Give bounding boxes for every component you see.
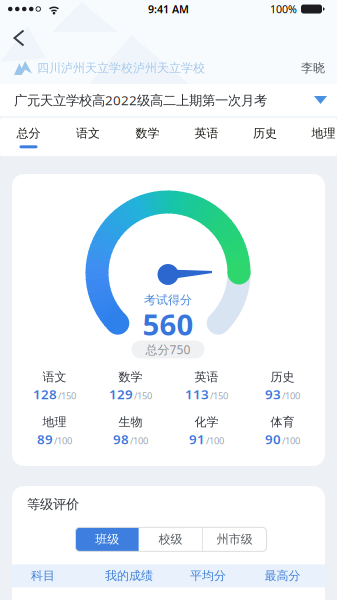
staticText: 我的成绩 xyxy=(105,568,153,583)
staticText: 考试得分 xyxy=(144,293,192,307)
staticText: 英语 xyxy=(194,126,218,141)
staticText: 体育 xyxy=(270,415,294,429)
staticText: 历史 xyxy=(253,126,277,141)
staticText: 数学 xyxy=(135,126,159,141)
staticText: 91 xyxy=(189,430,205,448)
staticText: 生物 xyxy=(118,415,142,429)
staticText: 总分750 xyxy=(145,341,190,357)
staticText: 广元天立学校高2022级高二上期第一次月考 xyxy=(14,91,267,109)
button[interactable]: 地理 xyxy=(311,125,335,148)
staticText: 最高分 xyxy=(264,568,300,583)
staticText: /100 xyxy=(282,389,300,402)
staticText: /100 xyxy=(54,434,72,447)
staticText: 100% xyxy=(270,2,297,16)
staticText: 89 xyxy=(37,430,53,448)
staticText: /150 xyxy=(58,389,76,402)
button[interactable]: 校级 xyxy=(139,527,202,551)
staticText: 90 xyxy=(265,430,281,448)
staticText: 科目 xyxy=(31,568,55,583)
staticText: 93 xyxy=(265,385,281,403)
staticText: /100 xyxy=(282,434,300,447)
button[interactable]: Back xyxy=(7,24,30,51)
staticText: 数学 xyxy=(118,370,142,384)
staticText: 语文 xyxy=(42,370,66,384)
button[interactable]: 班级 xyxy=(75,527,139,551)
staticText: 地理 xyxy=(42,415,66,429)
staticText: 班级 xyxy=(95,532,119,547)
staticText: 平均分 xyxy=(190,568,226,583)
staticText: 128 xyxy=(33,385,57,403)
button[interactable]: 语文 xyxy=(76,125,100,148)
staticText: 129 xyxy=(109,385,133,403)
staticText: 9:41 AM xyxy=(148,2,189,16)
staticText: /150 xyxy=(134,389,152,402)
button[interactable]: 总分 xyxy=(16,125,40,148)
staticText: 化学 xyxy=(194,415,218,429)
button[interactable]: 广元天立学校高2022级高二上期第一次月考 xyxy=(0,84,337,116)
staticText: 英语 xyxy=(194,370,218,384)
staticText: /150 xyxy=(210,389,228,402)
staticText: 四川泸州天立学校泸州天立学校 xyxy=(37,61,205,75)
button[interactable]: 州市级 xyxy=(203,527,266,551)
staticText: 校级 xyxy=(158,532,182,547)
staticText: 地理 xyxy=(311,126,335,141)
staticText: /100 xyxy=(130,434,148,447)
staticText: 李晓 xyxy=(301,61,325,75)
staticText: /100 xyxy=(206,434,224,447)
staticText: 州市级 xyxy=(217,532,253,547)
staticText: 历史 xyxy=(270,370,294,384)
staticText: 等级评价 xyxy=(27,496,79,512)
staticText: 560 xyxy=(142,304,193,343)
button[interactable]: 英语 xyxy=(194,125,218,148)
staticText: 总分 xyxy=(16,126,40,141)
staticText: 98 xyxy=(113,430,129,448)
staticText: 语文 xyxy=(76,126,100,141)
button[interactable]: 数学 xyxy=(135,125,159,148)
staticText: 113 xyxy=(185,385,209,403)
button[interactable]: 历史 xyxy=(253,125,277,148)
